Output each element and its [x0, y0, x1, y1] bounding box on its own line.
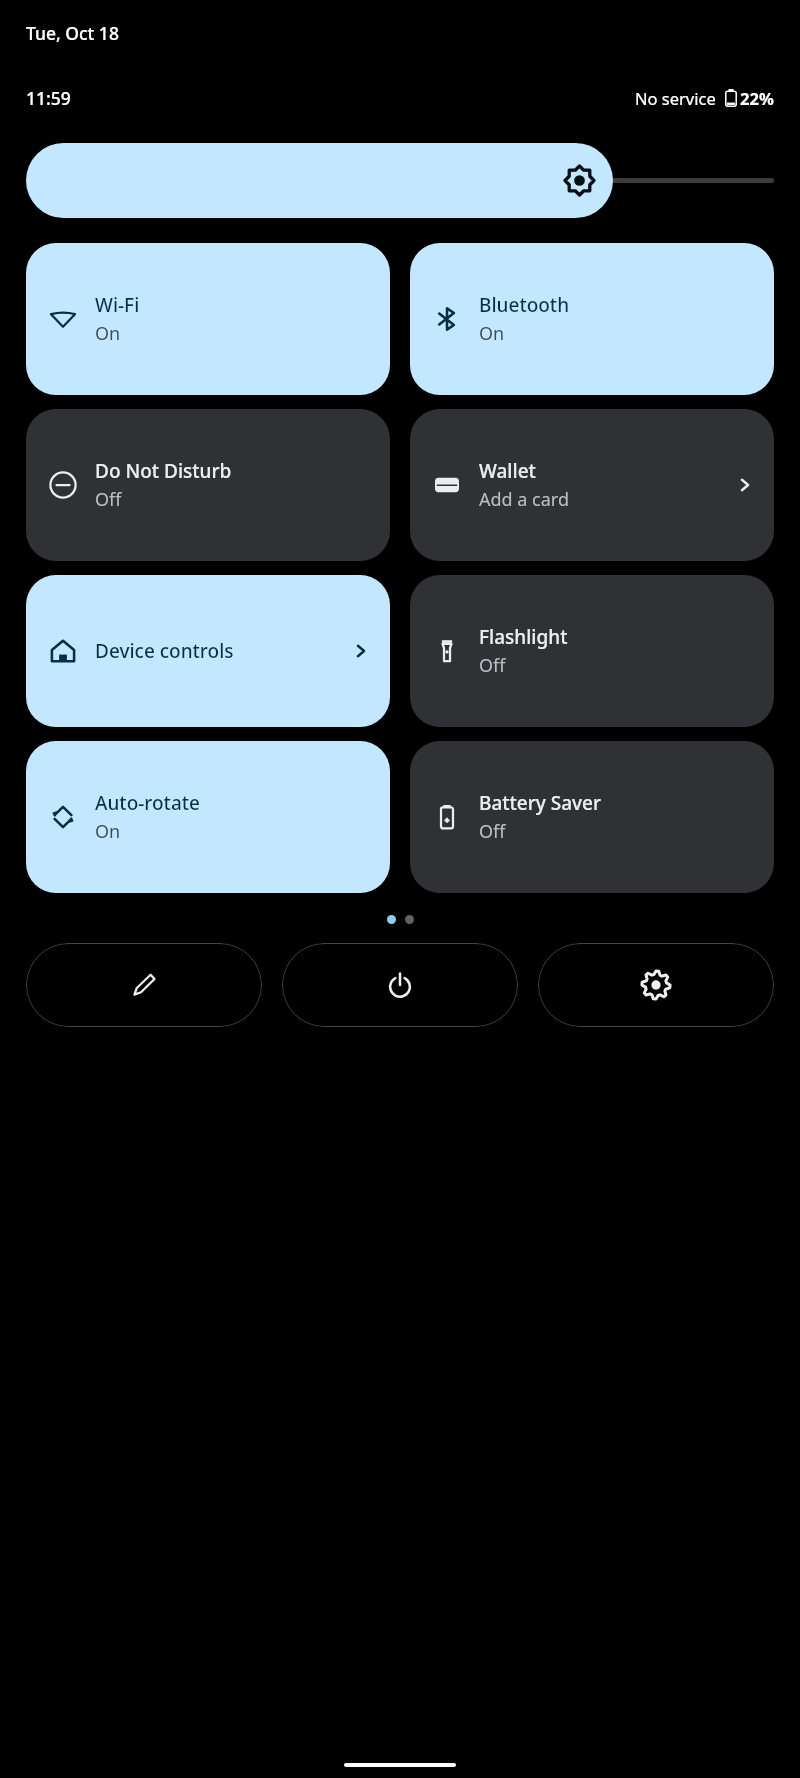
staticText: Device controls — [95, 638, 234, 664]
button[interactable]: Wi-Fi — [26, 243, 390, 395]
button[interactable]: Wallet — [410, 409, 774, 561]
staticText: Auto-rotate — [95, 790, 200, 816]
button[interactable]: Do Not Disturb — [26, 409, 390, 561]
staticText: Flashlight — [479, 624, 568, 650]
button[interactable]: Edit — [26, 943, 262, 1027]
button[interactable]: Power — [282, 943, 518, 1027]
staticText: 11:59 — [26, 86, 71, 110]
staticText: No service — [635, 87, 716, 109]
staticText: On — [95, 819, 121, 844]
button[interactable]: Flashlight — [410, 575, 774, 727]
button[interactable]: Device controls — [26, 575, 390, 727]
staticText: 22% — [740, 87, 774, 109]
staticText: Off — [479, 819, 506, 844]
staticText: On — [479, 321, 505, 346]
staticText: Battery Saver — [479, 790, 602, 816]
staticText: Tue, Oct 18 — [26, 21, 119, 45]
staticText: On — [95, 321, 121, 346]
button[interactable]: Battery Saver — [410, 741, 774, 893]
button[interactable]: Auto-rotate — [26, 741, 390, 893]
button[interactable]: Settings — [538, 943, 774, 1027]
staticText: Wallet — [479, 458, 536, 484]
staticText: Add a card — [479, 487, 569, 512]
button[interactable]: Brightness — [26, 143, 774, 218]
staticText: Wi-Fi — [95, 292, 140, 318]
staticText: Off — [95, 487, 122, 512]
button[interactable]: Bluetooth — [410, 243, 774, 395]
staticText: Do Not Disturb — [95, 458, 232, 484]
staticText: Bluetooth — [479, 292, 570, 318]
staticText: Off — [479, 653, 506, 678]
